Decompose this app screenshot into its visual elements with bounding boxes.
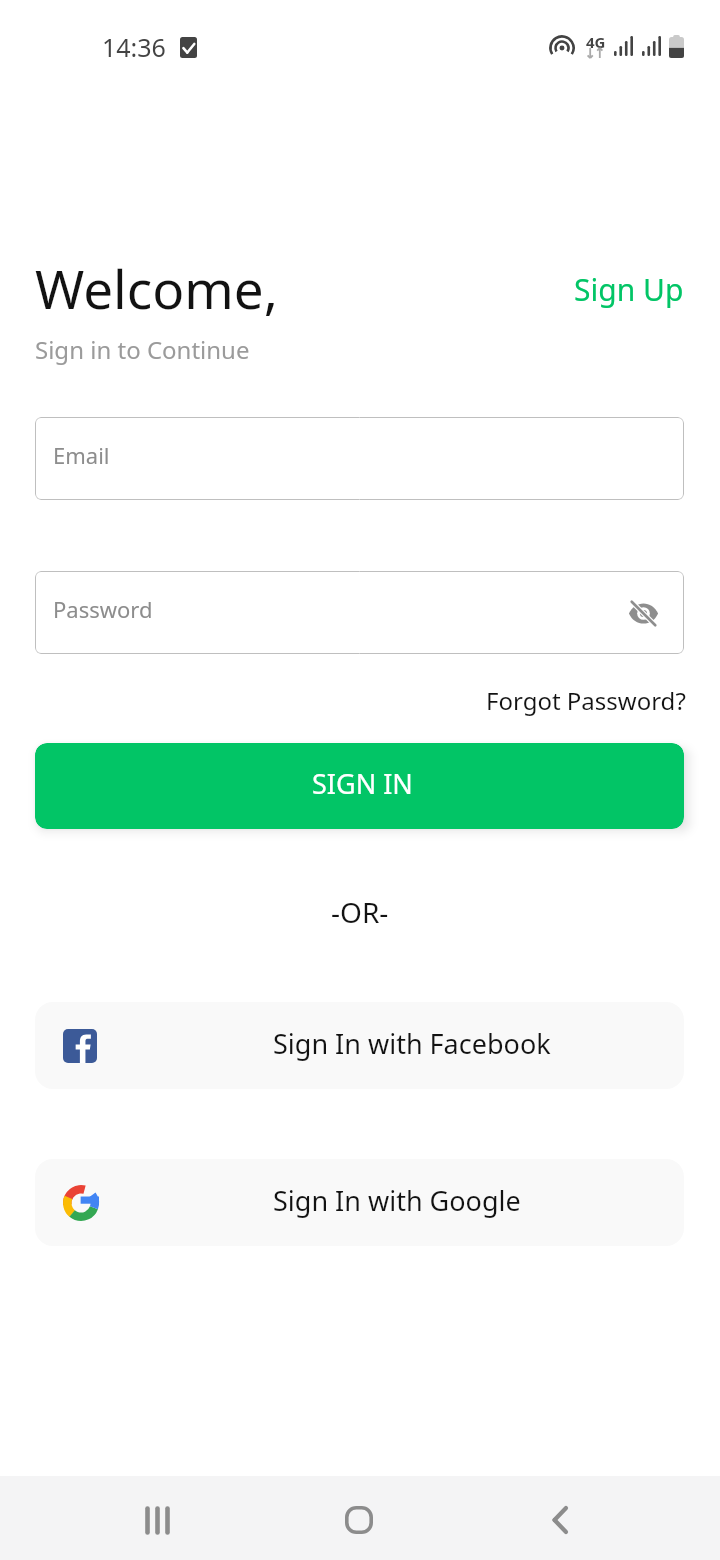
button[interactable]: Password [35,571,684,654]
staticText: 4G [586,32,606,52]
button[interactable]: Forgot Password? [478,680,694,721]
staticText: Password [53,594,153,624]
staticText: Sign Up [574,269,684,310]
staticText: -OR- [331,893,389,931]
staticText: Sign In with Google [273,1182,521,1219]
staticText: Email [53,440,110,470]
button[interactable]: Email [35,417,684,500]
button[interactable]: Home [319,1476,399,1560]
staticText: SIGN IN [312,765,413,802]
button[interactable]: Recent apps [117,1476,197,1560]
button[interactable]: Back [520,1476,600,1560]
button[interactable]: Sign Up [566,265,692,314]
staticText: 14:36 [102,30,166,64]
staticText: Sign In with Facebook [273,1025,551,1062]
button[interactable]: Sign In with Facebook [35,1002,684,1089]
staticText: Sign in to Continue [35,333,250,366]
staticText: Forgot Password? [486,684,686,717]
button[interactable]: Show password [619,589,667,637]
button[interactable]: Sign In with Google [35,1159,684,1246]
button[interactable]: SIGN IN [35,743,684,829]
staticText: Welcome, [35,252,278,324]
